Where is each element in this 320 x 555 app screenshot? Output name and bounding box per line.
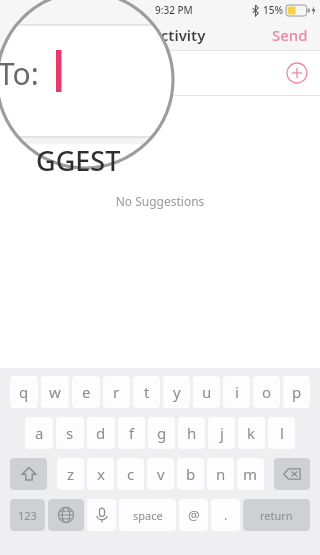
button[interactable]: Add contact (286, 62, 308, 84)
staticText: w (49, 382, 61, 402)
button[interactable]: g (148, 417, 175, 449)
button[interactable]: f (118, 417, 145, 449)
button[interactable]: b (177, 458, 204, 490)
staticText: p (292, 382, 302, 402)
button[interactable]: q (10, 376, 38, 408)
staticText: e (82, 382, 91, 402)
button[interactable]: o (253, 376, 280, 408)
button[interactable]: s (56, 417, 84, 449)
staticText: l (280, 423, 284, 443)
staticText: space (133, 508, 163, 523)
button[interactable]: h (178, 417, 205, 449)
button[interactable]: d (87, 417, 115, 449)
staticText: y (173, 382, 181, 402)
button[interactable]: Shift (10, 458, 47, 490)
button[interactable]: w (41, 376, 69, 408)
staticText: New Activity (114, 25, 206, 45)
button[interactable]: t (133, 376, 160, 408)
staticText: v (157, 464, 165, 484)
staticText: a (35, 423, 44, 443)
staticText: t (144, 382, 150, 402)
button[interactable]: m (237, 458, 264, 490)
button[interactable]: . (211, 499, 240, 531)
staticText: z (67, 464, 75, 484)
button[interactable]: Switch keyboard (48, 499, 84, 531)
button[interactable]: u (193, 376, 220, 408)
staticText: j (220, 423, 224, 443)
staticText: r (113, 382, 120, 402)
button[interactable]: v (147, 458, 174, 490)
staticText: Send (272, 25, 308, 45)
button[interactable]: e (72, 376, 100, 408)
staticText: o (262, 382, 272, 402)
staticText: To: (0, 53, 39, 94)
staticText: u (202, 382, 212, 402)
button[interactable]: j (208, 417, 235, 449)
staticText: i (235, 382, 239, 402)
button[interactable]: @ (179, 499, 208, 531)
button[interactable]: x (87, 458, 114, 490)
staticText: n (216, 464, 226, 484)
staticText: GGEST (36, 142, 121, 179)
button[interactable]: n (207, 458, 234, 490)
staticText: q (19, 382, 29, 402)
staticText: . (224, 506, 228, 524)
staticText: 123 (18, 508, 37, 523)
staticText: f (129, 423, 135, 443)
staticText: m (243, 464, 258, 484)
button[interactable]: z (57, 458, 84, 490)
button[interactable]: Send (260, 21, 320, 49)
button[interactable]: return (243, 499, 310, 531)
button[interactable]: space (119, 499, 176, 531)
staticText: s (66, 423, 74, 443)
staticText: To: (14, 63, 35, 83)
staticText: x (97, 464, 105, 484)
button[interactable]: Backspace (274, 458, 310, 490)
button[interactable]: c (117, 458, 144, 490)
button[interactable]: r (103, 376, 130, 408)
staticText: @ (188, 506, 200, 524)
button[interactable]: a (25, 417, 53, 449)
staticText: c (127, 464, 135, 484)
staticText: h (187, 423, 197, 443)
staticText: g (157, 423, 167, 443)
staticText: k (247, 423, 256, 443)
staticText: return (260, 508, 293, 523)
button[interactable]: y (163, 376, 190, 408)
button[interactable]: 123 (10, 499, 45, 531)
button[interactable]: l (268, 417, 295, 449)
button[interactable]: Dictation (87, 499, 116, 531)
button[interactable]: i (223, 376, 250, 408)
staticText: No Suggestions (0, 193, 320, 209)
staticText: 15% (263, 3, 283, 17)
staticText: 9:32 PM (155, 3, 193, 17)
staticText: d (96, 423, 106, 443)
button[interactable]: k (238, 417, 265, 449)
staticText: b (186, 464, 196, 484)
button[interactable]: p (283, 376, 310, 408)
